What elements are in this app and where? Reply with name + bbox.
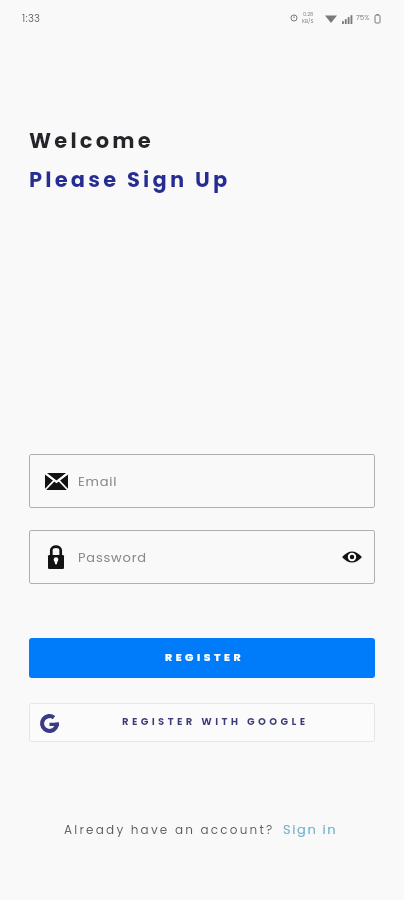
button[interactable]: REGISTER — [29, 638, 375, 678]
staticText: KB/S — [302, 18, 314, 25]
staticText: REGISTER WITH GOOGLE — [122, 714, 309, 728]
staticText: Password — [78, 548, 147, 566]
staticText: REGISTER — [165, 649, 245, 664]
button[interactable]: Sign in — [282, 817, 339, 841]
staticText: 75% — [356, 13, 370, 23]
staticText: Please Sign Up — [29, 165, 231, 194]
button[interactable]: Show password — [342, 547, 362, 567]
staticText: Email — [78, 472, 118, 490]
button[interactable]: Email — [29, 454, 375, 508]
staticText: 0.28 — [303, 11, 314, 18]
staticText: Already have an account? — [64, 821, 275, 838]
button[interactable]: REGISTER WITH GOOGLE — [29, 703, 375, 742]
staticText: Sign in — [283, 820, 338, 838]
staticText: Welcome — [29, 126, 154, 155]
staticText: 1:33 — [22, 11, 41, 25]
button[interactable]: Password — [29, 530, 375, 584]
